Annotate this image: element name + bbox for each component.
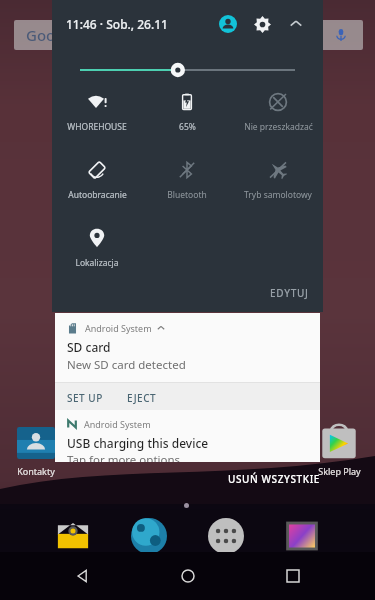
staticText: Autoobracanie (68, 189, 127, 201)
staticText: USB charging this device (67, 435, 209, 451)
button[interactable]: Photos (284, 518, 320, 554)
button[interactable]: Email (55, 518, 91, 554)
staticText: 65% (179, 121, 196, 133)
staticText: WHOREHOUSE (67, 121, 127, 133)
button[interactable]: Settings (249, 11, 275, 37)
button[interactable]: WHOREHOUSE (52, 92, 142, 154)
button[interactable]: Browser (131, 518, 167, 554)
button[interactable]: Kontakty (8, 424, 64, 477)
button[interactable]: Voice search (318, 20, 363, 50)
button[interactable]: Bluetooth (142, 160, 232, 222)
staticText: Nie przeszkadzać (244, 121, 313, 133)
button[interactable]: 11:46 · Sob., 26.11 (66, 16, 168, 32)
button[interactable] (52, 59, 323, 81)
staticText: Sklep Play (318, 465, 361, 477)
button[interactable]: SET UP (55, 383, 115, 413)
button[interactable]: Autoobracanie (52, 160, 142, 222)
button[interactable]: Goo (14, 20, 74, 50)
staticText: Lokalizacja (75, 257, 119, 269)
staticText: SD card (67, 339, 111, 355)
staticText: Tryb samolotowy (244, 189, 312, 201)
button[interactable]: Recents (269, 552, 317, 600)
button[interactable]: 65% (142, 92, 232, 154)
staticText: Android System (84, 418, 151, 430)
staticText: SET UP (67, 391, 103, 405)
staticText: Bluetooth (167, 189, 207, 201)
button[interactable]: Android System (55, 313, 320, 382)
staticText: Kontakty (17, 465, 55, 477)
button[interactable]: Lokalizacja (52, 228, 142, 290)
staticText: New SD card detected (67, 357, 186, 373)
button[interactable]: Home (164, 552, 212, 600)
button[interactable]: All apps (208, 518, 244, 554)
button[interactable]: Back (58, 552, 106, 600)
button[interactable]: EJECT (115, 383, 169, 413)
button[interactable]: Tryb samolotowy (233, 160, 323, 222)
staticText: Tap for more options. (67, 452, 184, 462)
button[interactable]: USUŃ WSZYSTKIE (228, 472, 321, 486)
button[interactable]: EDYTUJ (270, 286, 309, 300)
staticText: Goo (26, 25, 56, 45)
button[interactable]: Android System (55, 410, 320, 462)
button[interactable]: Nie przeszkadzać (233, 92, 323, 154)
button[interactable]: Sklep Play (311, 424, 367, 477)
staticText: EJECT (127, 391, 157, 405)
button[interactable]: User (215, 11, 241, 37)
button[interactable]: Collapse (283, 11, 309, 37)
staticText: Android System (85, 322, 152, 334)
